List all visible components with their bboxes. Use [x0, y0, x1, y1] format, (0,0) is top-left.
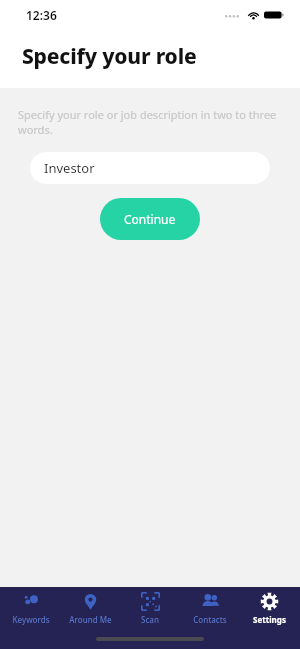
staticText: Scan: [141, 614, 159, 625]
button[interactable]: Continue: [100, 198, 200, 240]
staticText: Settings: [253, 614, 286, 625]
button[interactable]: Around Me: [61, 587, 119, 625]
staticText: Specify your role or job description in …: [18, 107, 288, 137]
button[interactable]: Scan: [121, 587, 179, 625]
button[interactable]: Contacts: [181, 587, 239, 625]
staticText: Around Me: [69, 614, 112, 625]
other: Contacts: [201, 592, 220, 611]
other: Scan: [141, 592, 160, 611]
other: Around Me: [81, 592, 100, 611]
other: Keywords: [22, 592, 41, 611]
staticText: Continue: [124, 211, 176, 227]
staticText: Specify your role: [22, 42, 197, 71]
button[interactable]: Keywords: [2, 587, 60, 625]
button[interactable]: Investor: [30, 152, 270, 184]
staticText: Investor: [44, 159, 95, 177]
staticText: Contacts: [193, 614, 227, 625]
other: Settings: [260, 592, 279, 611]
button[interactable]: Settings: [240, 587, 298, 625]
staticText: 12:36: [26, 7, 57, 23]
staticText: Keywords: [12, 614, 50, 625]
